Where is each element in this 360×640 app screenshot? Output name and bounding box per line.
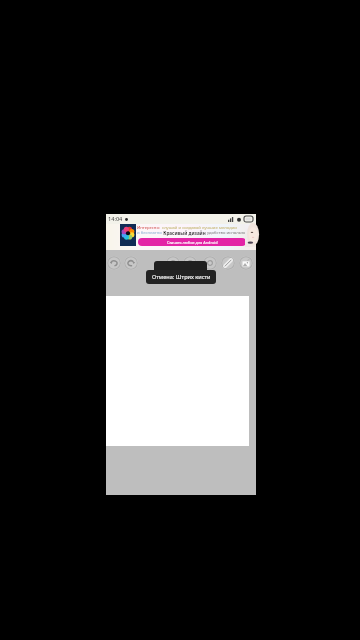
staticText: Скачать любое для Android <box>167 240 218 245</box>
button[interactable]: Eraser <box>183 256 197 270</box>
staticText: слушай и создавай лучшие мелодии <box>161 225 237 231</box>
staticText: удобство использования <box>206 230 258 236</box>
button[interactable]: Undo <box>107 256 121 270</box>
button[interactable]: Brush settings <box>154 261 207 272</box>
staticText: Интересно: <box>137 225 161 231</box>
button[interactable]: Color <box>203 256 217 270</box>
button[interactable]: Redo <box>124 256 138 270</box>
staticText: и бесплатно <box>137 230 162 236</box>
button[interactable]: Интересно: <box>106 224 256 250</box>
staticText: Красивый дизайн <box>162 230 206 236</box>
button[interactable]: Скачать любое для Android <box>138 238 246 246</box>
button[interactable]: Save image <box>239 256 253 270</box>
staticText: Отмена: Штрих кисти <box>152 273 211 281</box>
staticText: 14:04 <box>108 215 123 223</box>
button[interactable]: Brush <box>166 256 180 270</box>
button[interactable]: Отмена: Штрих кисти <box>146 270 216 284</box>
button[interactable]: Pen <box>221 256 235 270</box>
